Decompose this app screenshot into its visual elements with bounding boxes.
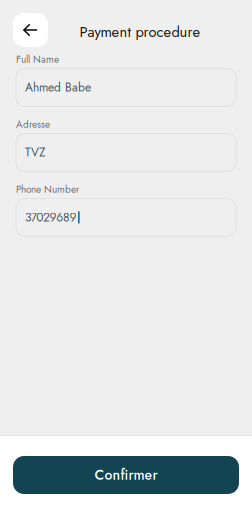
staticText: Confirmer xyxy=(94,465,157,485)
staticText: Payment procedure xyxy=(79,21,200,43)
staticText: Ahmed Babe xyxy=(25,79,91,96)
staticText: TVZ xyxy=(25,144,46,161)
staticText: Adresse xyxy=(16,117,50,131)
staticText: 37029689 xyxy=(25,209,77,226)
staticText: Full Name xyxy=(16,52,59,66)
staticText: Phone Number xyxy=(16,182,79,196)
button[interactable]: Back xyxy=(13,13,48,47)
button[interactable]: Confirmer xyxy=(13,456,239,494)
